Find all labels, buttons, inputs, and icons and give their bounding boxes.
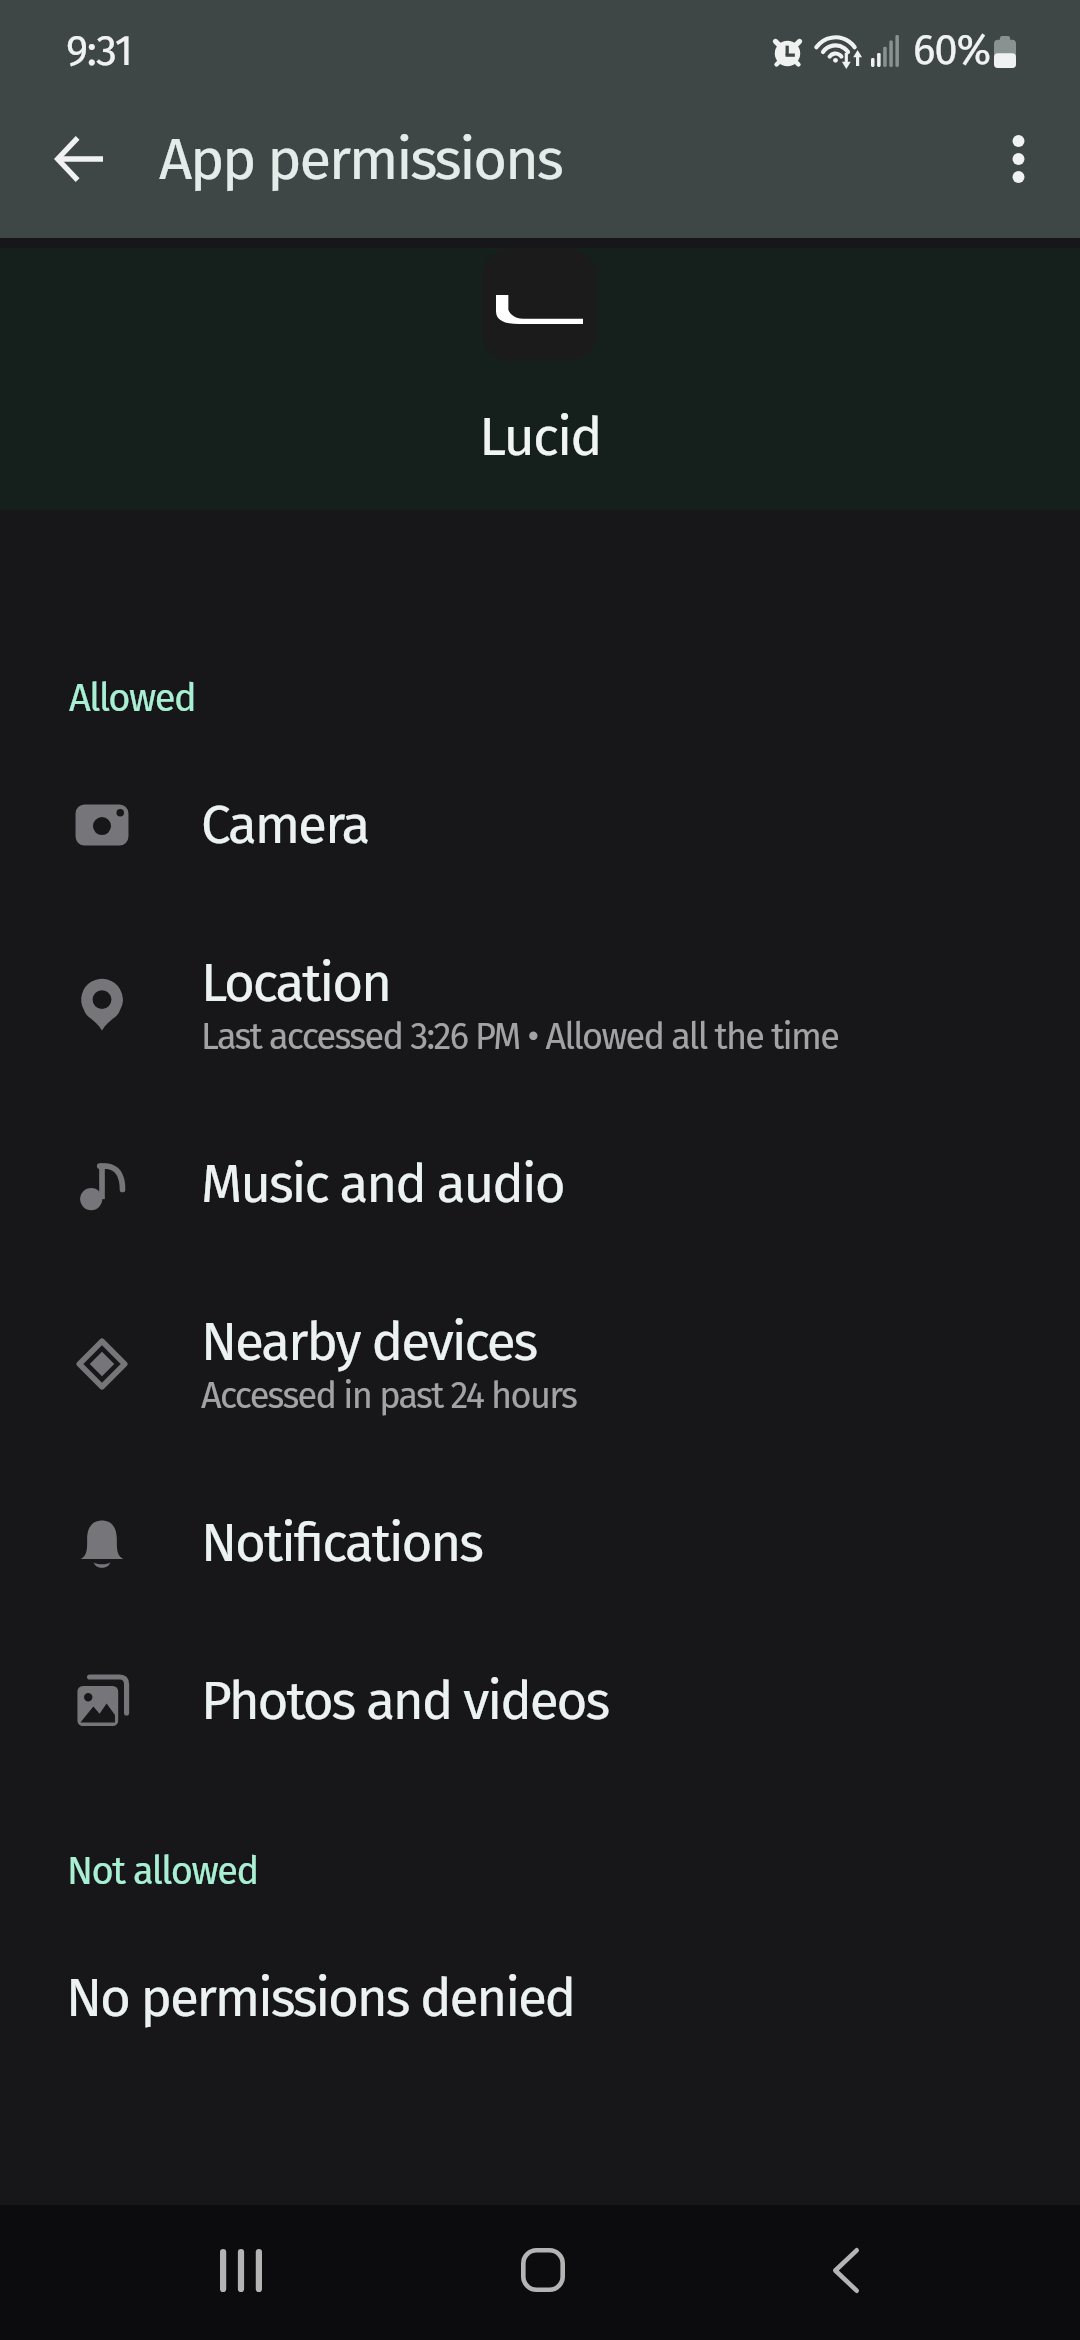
staticText: Location [201,951,390,1015]
button[interactable]: Location [0,904,1080,1105]
staticText: Accessed in past 24 hours [201,1374,577,1417]
staticText: Last accessed 3:26 PM • Allowed all the … [201,1015,839,1058]
staticText: Not allowed [67,1848,258,1894]
staticText: Notifications [201,1511,482,1575]
button[interactable]: Nearby devices [0,1263,1080,1464]
button[interactable]: More options [972,113,1064,205]
button[interactable]: Navigate up [33,113,125,205]
staticText: Nearby devices [201,1310,537,1374]
button[interactable]: Photos and videos [0,1622,1080,1780]
staticText: Allowed [69,675,196,721]
button[interactable]: Music and audio [0,1105,1080,1263]
button[interactable]: Camera [0,746,1080,904]
button[interactable]: Home [453,2205,633,2335]
button[interactable]: Back [756,2205,936,2335]
button[interactable]: Notifications [0,1464,1080,1622]
button[interactable]: Recent apps [151,2205,331,2335]
staticText: Music and audio [201,1152,564,1216]
staticText: Photos and videos [201,1669,609,1733]
staticText: 60% [913,25,990,75]
staticText: App permissions [159,125,562,195]
staticText: No permissions denied [66,1966,575,2030]
staticText: 9:31 [66,26,132,76]
staticText: Lucid [0,405,1080,470]
staticText: Camera [201,793,369,857]
